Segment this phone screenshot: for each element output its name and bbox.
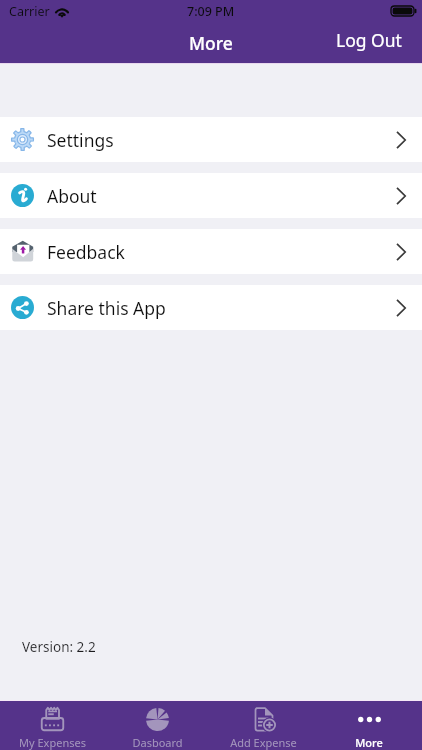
button[interactable]: About (0, 173, 422, 218)
staticText: Add Expense (230, 735, 297, 750)
staticText: More (355, 735, 383, 750)
staticText: Version: 2.2 (22, 638, 96, 656)
staticText: My Expenses (19, 735, 86, 750)
staticText: Settings (47, 128, 114, 152)
staticText: Log Out (336, 28, 402, 52)
button[interactable]: More (316, 700, 422, 750)
button[interactable]: Add Expense (210, 700, 316, 750)
button[interactable]: Settings (0, 117, 422, 162)
button[interactable]: My Expenses (0, 700, 105, 750)
staticText: Carrier (9, 3, 50, 20)
button[interactable]: Feedback (0, 229, 422, 274)
staticText: More (189, 31, 233, 55)
staticText: Dasboard (132, 735, 183, 750)
button[interactable]: Dasboard (105, 700, 210, 750)
staticText: 7:09 PM (187, 3, 235, 20)
staticText: Feedback (47, 240, 125, 264)
button[interactable]: Log Out (336, 28, 402, 52)
staticText: Share this App (47, 296, 166, 320)
staticText: About (47, 184, 97, 208)
button[interactable]: Share this App (0, 285, 422, 330)
